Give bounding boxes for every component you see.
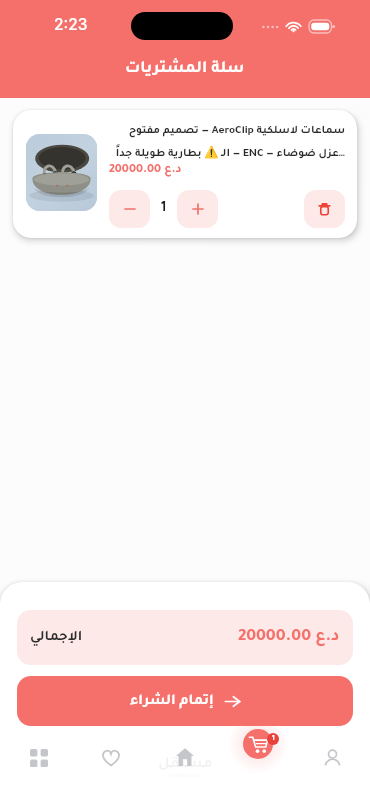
staticText: 2:23 [54, 15, 88, 34]
button[interactable]: Increase quantity [177, 190, 218, 228]
button[interactable]: Favorites [88, 735, 134, 781]
staticText: ‫سماعات لاسلكية AeroClip — تصميم مفتوح ع… [109, 126, 345, 160]
staticText: 20000.00 د.ع [109, 164, 345, 177]
staticText: مستقل [158, 757, 213, 773]
button[interactable]: Delete item [304, 190, 345, 228]
staticText: 1 [150, 202, 177, 216]
staticText: 1 [272, 735, 275, 743]
staticText: سلة المشتريات [125, 61, 245, 78]
button[interactable]: إتمام الشراء [17, 676, 353, 726]
button[interactable]: Shopping cart [243, 729, 273, 759]
button[interactable]: Categories [16, 735, 62, 781]
button[interactable]: Profile [309, 735, 355, 781]
button[interactable]: Decrease quantity [109, 190, 150, 228]
staticText: إتمام الشراء [130, 694, 214, 709]
staticText: الإجمالي [30, 631, 83, 645]
button[interactable]: Home [162, 734, 208, 780]
staticText: 20000.00 د.ع [238, 629, 340, 647]
